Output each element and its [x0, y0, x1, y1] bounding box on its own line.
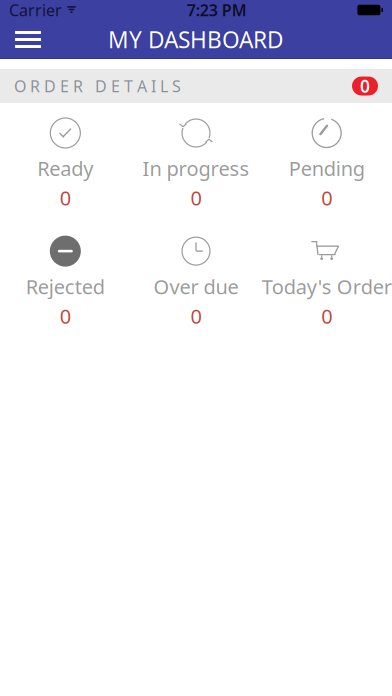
button[interactable]: Rejected: [0, 229, 131, 333]
button[interactable]: Over due: [131, 229, 261, 333]
staticText: 0: [321, 185, 332, 211]
button[interactable]: In progress: [131, 111, 261, 215]
staticText: 0: [60, 185, 71, 211]
staticText: Ready: [37, 155, 93, 182]
staticText: Over due: [153, 273, 238, 300]
staticText: Today's Order: [262, 273, 392, 300]
button[interactable]: Menu: [6, 19, 50, 59]
button[interactable]: Ready: [0, 111, 131, 215]
staticText: Pending: [289, 155, 365, 182]
staticText: 7:23 PM: [187, 0, 247, 21]
staticText: Rejected: [26, 273, 105, 300]
staticText: Carrier: [9, 0, 62, 21]
staticText: 0: [190, 185, 201, 211]
button[interactable]: Today's Order: [261, 229, 392, 333]
staticText: O R D E R D E T A I L S: [14, 75, 181, 97]
staticText: MY DASHBOARD: [108, 24, 284, 54]
staticText: 0: [360, 74, 370, 97]
staticText: In progress: [142, 155, 249, 182]
staticText: 0: [190, 303, 201, 329]
staticText: 0: [321, 303, 332, 329]
button[interactable]: Pending: [261, 111, 392, 215]
staticText: 0: [60, 303, 71, 329]
